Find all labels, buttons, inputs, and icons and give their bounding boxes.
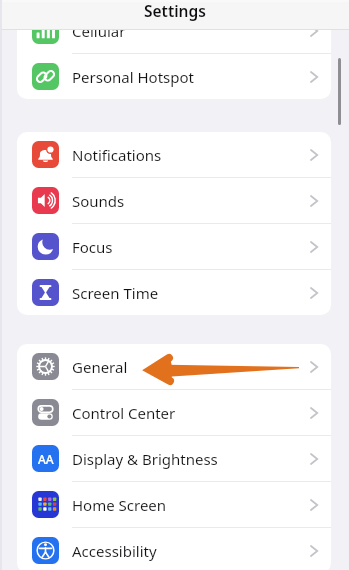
staticText: Settings <box>144 0 206 21</box>
button[interactable]: Accessibility <box>17 528 331 570</box>
staticText: Display & Brightness <box>72 449 218 469</box>
staticText: Sounds <box>72 191 125 211</box>
button[interactable]: Personal Hotspot <box>17 54 331 99</box>
staticText: Personal Hotspot <box>72 67 194 87</box>
staticText: AA <box>38 451 54 467</box>
staticText: Accessibility <box>72 541 157 561</box>
staticText: Control Center <box>72 403 176 423</box>
button[interactable]: Home Screen <box>17 482 331 527</box>
button[interactable]: Control Center <box>17 390 331 435</box>
staticText: Home Screen <box>72 495 167 515</box>
staticText: General <box>72 357 128 377</box>
button[interactable]: Focus <box>17 224 331 269</box>
button[interactable]: Sounds <box>17 178 331 223</box>
button[interactable]: Cellular <box>17 8 331 53</box>
staticText: Screen Time <box>72 283 159 303</box>
staticText: Focus <box>72 237 113 257</box>
staticText: Notifications <box>72 145 162 165</box>
button[interactable]: Notifications <box>17 132 331 177</box>
button[interactable]: AA <box>17 436 331 481</box>
button[interactable]: Screen Time <box>17 270 331 315</box>
staticText: Cellular <box>72 21 126 41</box>
button[interactable]: General <box>17 344 331 389</box>
